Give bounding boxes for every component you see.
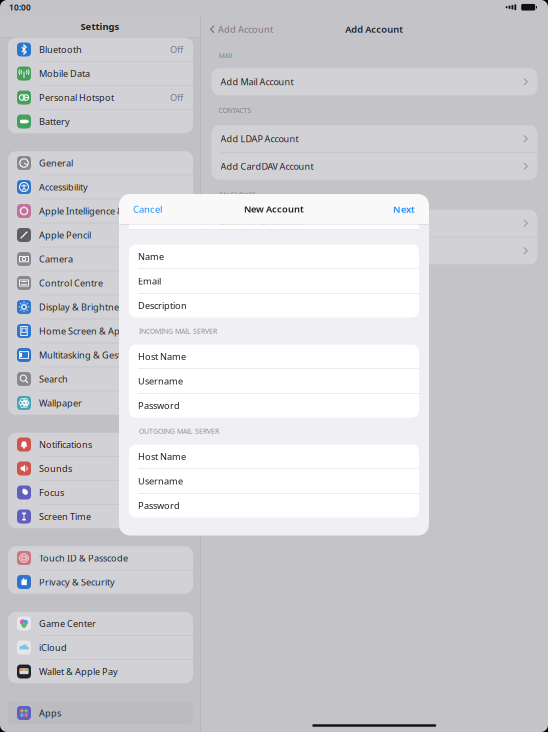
staticText: Next bbox=[393, 203, 415, 215]
staticText: Name bbox=[138, 250, 164, 263]
staticText: Cancel bbox=[133, 203, 162, 215]
button[interactable]: Camera bbox=[8, 247, 193, 271]
staticText: Accessibility bbox=[39, 181, 88, 193]
staticText: Display & Brightness bbox=[39, 301, 127, 313]
staticText: Wallpaper bbox=[39, 397, 82, 409]
staticText: MAIL bbox=[218, 51, 234, 60]
button[interactable]: Display & Brightness bbox=[8, 295, 193, 319]
staticText: Email bbox=[138, 275, 161, 287]
button[interactable]: Search bbox=[8, 367, 193, 391]
staticText: CALENDARS bbox=[218, 190, 256, 199]
staticText: Camera bbox=[39, 253, 73, 265]
staticText: Control Centre bbox=[39, 277, 103, 289]
button[interactable]: Bluetooth bbox=[8, 38, 193, 61]
staticText: General bbox=[39, 157, 73, 169]
button[interactable]: Add Subscribed Calendar bbox=[211, 237, 537, 264]
staticText: Battery bbox=[39, 115, 70, 128]
button[interactable]: Name bbox=[129, 244, 419, 268]
button[interactable]: Screen Time bbox=[8, 505, 193, 528]
staticText: Search bbox=[39, 373, 68, 385]
button[interactable]: Apps bbox=[8, 701, 193, 725]
staticText: Password bbox=[138, 499, 180, 512]
staticText: OUTGOING MAIL SERVER bbox=[139, 426, 219, 436]
button[interactable]: Cancel bbox=[119, 195, 176, 223]
button[interactable]: Personal Hotspot bbox=[8, 86, 193, 109]
button[interactable]: Wallpaper bbox=[8, 391, 193, 415]
button[interactable]: Password bbox=[129, 493, 419, 517]
button[interactable]: Multitasking & Gestures bbox=[8, 343, 193, 367]
staticText: Off bbox=[170, 43, 183, 56]
staticText: iCloud bbox=[39, 641, 67, 654]
button[interactable]: Focus bbox=[8, 481, 193, 504]
staticText: Game Center bbox=[39, 617, 96, 630]
button[interactable]: Apple Intelligence & Siri bbox=[8, 199, 193, 223]
button[interactable]: Add Account bbox=[200, 17, 273, 41]
staticText: Multitasking & Gestures bbox=[39, 349, 140, 361]
staticText: New Account bbox=[244, 203, 304, 215]
button[interactable]: Email bbox=[129, 269, 419, 293]
staticText: Bluetooth bbox=[39, 43, 82, 56]
staticText: Username bbox=[138, 475, 183, 487]
staticText: Privacy & Security bbox=[39, 576, 115, 588]
staticText: Add Account bbox=[345, 23, 403, 36]
staticText: Screen Time bbox=[39, 510, 91, 523]
staticText: Apps bbox=[39, 707, 61, 719]
button[interactable]: Home Screen & App Library bbox=[8, 319, 193, 343]
button[interactable]: Username bbox=[129, 469, 419, 493]
button[interactable]: Add Mail Account bbox=[211, 68, 537, 95]
staticText: Sounds bbox=[39, 462, 72, 475]
staticText: Apple Intelligence & Siri bbox=[39, 205, 139, 217]
staticText: Description bbox=[138, 299, 187, 312]
button[interactable]: Accessibility bbox=[8, 175, 193, 199]
button[interactable]: General bbox=[8, 151, 193, 175]
staticText: Add CalDAV Account bbox=[220, 217, 305, 229]
button[interactable]: Add CalDAV Account bbox=[211, 210, 537, 237]
button[interactable]: Username bbox=[129, 369, 419, 393]
staticText: Notifications bbox=[39, 438, 92, 451]
staticText: Settings bbox=[80, 20, 119, 33]
button[interactable]: Touch ID & Passcode bbox=[8, 546, 193, 570]
staticText: Touch ID & Passcode bbox=[39, 552, 128, 564]
button[interactable]: Privacy & Security bbox=[8, 570, 193, 594]
button[interactable]: Wallet & Apple Pay bbox=[8, 660, 193, 683]
staticText: Add Mail Account bbox=[220, 76, 293, 88]
button[interactable]: Mobile Data bbox=[8, 62, 193, 85]
staticText: Off bbox=[170, 91, 183, 104]
staticText: Home Screen & App Library bbox=[39, 325, 159, 337]
staticText: Personal Hotspot bbox=[39, 91, 114, 104]
button[interactable]: Host Name bbox=[129, 444, 419, 468]
staticText: Focus bbox=[39, 486, 64, 499]
staticText: Host Name bbox=[138, 450, 186, 463]
button[interactable]: Password bbox=[129, 393, 419, 417]
button[interactable]: Control Centre bbox=[8, 271, 193, 295]
staticText: Add Account bbox=[218, 23, 273, 35]
staticText: 10:00 bbox=[9, 2, 31, 13]
staticText: Password bbox=[138, 399, 180, 412]
button[interactable]: Apple Pencil bbox=[8, 223, 193, 247]
staticText: Wallet & Apple Pay bbox=[39, 665, 118, 678]
button[interactable]: Battery bbox=[8, 110, 193, 133]
staticText: Username bbox=[138, 375, 183, 387]
button[interactable]: Host Name bbox=[129, 344, 419, 368]
staticText: Apple Pencil bbox=[39, 229, 91, 241]
staticText: Add LDAP Account bbox=[220, 133, 298, 145]
button[interactable]: Sounds bbox=[8, 457, 193, 480]
button[interactable]: Add LDAP Account bbox=[211, 125, 537, 152]
button[interactable]: Next bbox=[379, 195, 429, 223]
staticText: Host Name bbox=[138, 350, 186, 363]
button[interactable]: Notifications bbox=[8, 433, 193, 456]
button[interactable]: iCloud bbox=[8, 636, 193, 659]
staticText: INCOMING MAIL SERVER bbox=[139, 326, 217, 336]
staticText: Add CardDAV Account bbox=[220, 160, 313, 172]
button[interactable]: Description bbox=[129, 293, 419, 317]
staticText: CONTACTS bbox=[218, 105, 251, 115]
staticText: Mobile Data bbox=[39, 67, 90, 80]
button[interactable]: Add CardDAV Account bbox=[211, 153, 537, 180]
button[interactable]: Game Center bbox=[8, 612, 193, 635]
